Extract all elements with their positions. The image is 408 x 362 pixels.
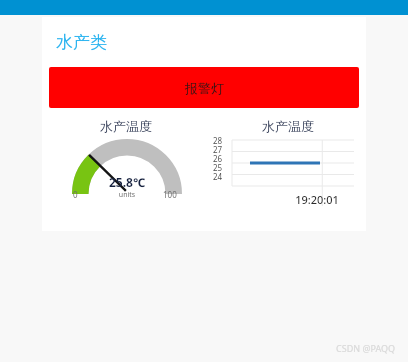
staticText: 26 [213,153,223,164]
staticText: 0 [73,189,78,200]
staticText: 报警灯 [185,80,224,96]
button[interactable]: 报警灯 [49,67,359,108]
staticText: 25.8℃ [89,174,165,190]
staticText: 19:20:01 [280,192,354,207]
staticText: 水产温度 [42,118,210,134]
staticText: 28 [213,135,223,146]
other: Temperature gauge 25.8 degrees [72,134,182,194]
staticText: 24 [213,171,223,182]
staticText: 25 [213,162,223,173]
staticText: 水产类 [56,32,107,53]
staticText: units [89,190,165,200]
button[interactable]: 水产温度 [42,113,210,229]
other: Temperature line chart [210,138,362,190]
staticText: CSDN @PAQQ [336,342,396,354]
staticText: 27 [213,144,223,155]
staticText: 水产温度 [210,118,366,134]
button[interactable]: 水产温度 [210,113,366,229]
staticText: 100 [163,189,177,200]
